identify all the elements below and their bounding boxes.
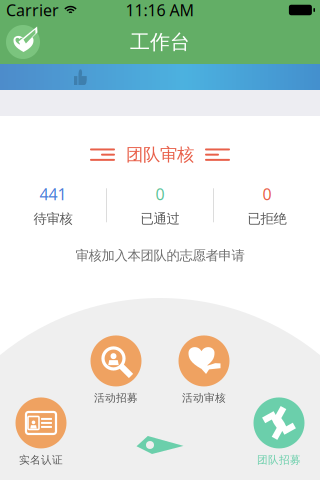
button[interactable]: 0 xyxy=(214,185,320,225)
button[interactable]: 活动招募 xyxy=(79,335,153,404)
staticText: 已通过 xyxy=(140,211,179,227)
staticText: 团队招募 xyxy=(257,453,301,466)
button[interactable]: 团队招募 xyxy=(242,397,316,466)
staticText: 441 xyxy=(39,183,66,205)
button[interactable]: 实名认证 xyxy=(4,397,78,466)
button[interactable]: 活动审核 xyxy=(167,335,241,404)
button[interactable]: Home xyxy=(4,23,42,61)
staticText: 团队审核 xyxy=(126,144,194,165)
staticText: 实名认证 xyxy=(19,453,63,466)
button[interactable]: 441 xyxy=(0,185,106,225)
staticText: 11:16 AM xyxy=(125,0,194,21)
staticText: 审核加入本团队的志愿者申请 xyxy=(75,247,244,264)
staticText: 待审核 xyxy=(33,211,72,227)
staticText: 已拒绝 xyxy=(247,211,286,227)
staticText: Carrier xyxy=(6,0,59,21)
staticText: 活动审核 xyxy=(182,391,226,404)
staticText: 0 xyxy=(155,183,164,205)
staticText: 0 xyxy=(262,183,271,205)
staticText: 活动招募 xyxy=(94,391,138,404)
staticText: 工作台 xyxy=(130,30,190,54)
button[interactable]: 0 xyxy=(107,185,213,225)
